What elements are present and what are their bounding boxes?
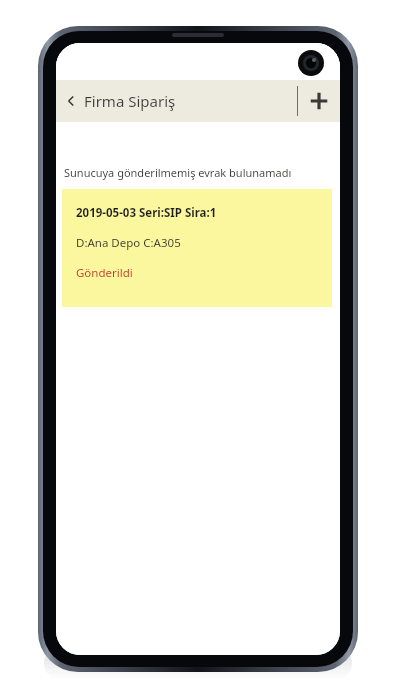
staticText: 2019-05-03 Seri:SIP Sira:1 xyxy=(76,205,217,221)
staticText: Gönderildi xyxy=(76,265,133,281)
staticText: Sunucuya gönderilmemiş evrak bulunamadı xyxy=(64,165,292,180)
button[interactable]: 2019-05-03 Seri:SIP Sira:1 xyxy=(62,189,332,307)
button[interactable]: Yeni ekle xyxy=(298,80,340,122)
button[interactable]: Firma Sipariş xyxy=(56,80,297,122)
staticText: Firma Sipariş xyxy=(84,91,176,111)
staticText: D:Ana Depo C:A305 xyxy=(76,235,181,251)
